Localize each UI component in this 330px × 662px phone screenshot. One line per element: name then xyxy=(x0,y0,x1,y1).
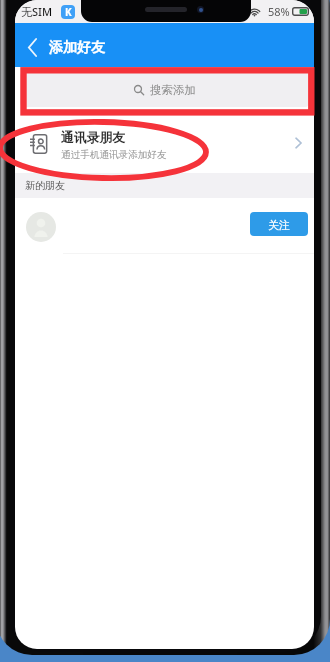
button[interactable]: 关注 xyxy=(15,198,314,254)
staticText: 无SIM xyxy=(21,4,53,19)
staticText: 新的朋友 xyxy=(25,179,65,192)
button[interactable]: 关注 xyxy=(250,212,308,236)
staticText: 添加好友 xyxy=(49,39,105,57)
staticText: K xyxy=(65,5,72,19)
button[interactable]: 搜索添加 xyxy=(20,72,309,107)
staticText: 关注 xyxy=(268,218,290,232)
staticText: 58% xyxy=(268,4,290,19)
staticText: 通过手机通讯录添加好友 xyxy=(61,149,167,161)
staticText: 通讯录朋友 xyxy=(61,130,125,146)
staticText: 搜索添加 xyxy=(150,83,196,97)
button[interactable]: 通讯录朋友 xyxy=(15,112,314,173)
button[interactable]: Back xyxy=(19,23,46,67)
